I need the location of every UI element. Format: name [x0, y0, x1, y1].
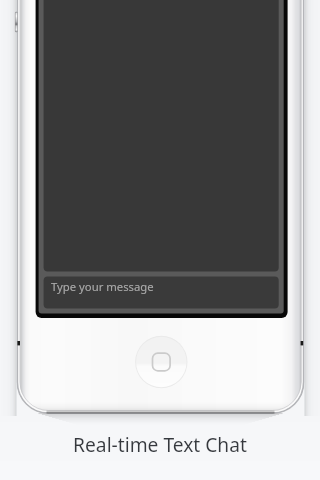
button[interactable]: Home	[135, 335, 188, 388]
staticText: Type your message	[51, 279, 154, 294]
button[interactable]: Type your message	[44, 276, 279, 308]
staticText: Real-time Text Chat	[0, 431, 320, 457]
